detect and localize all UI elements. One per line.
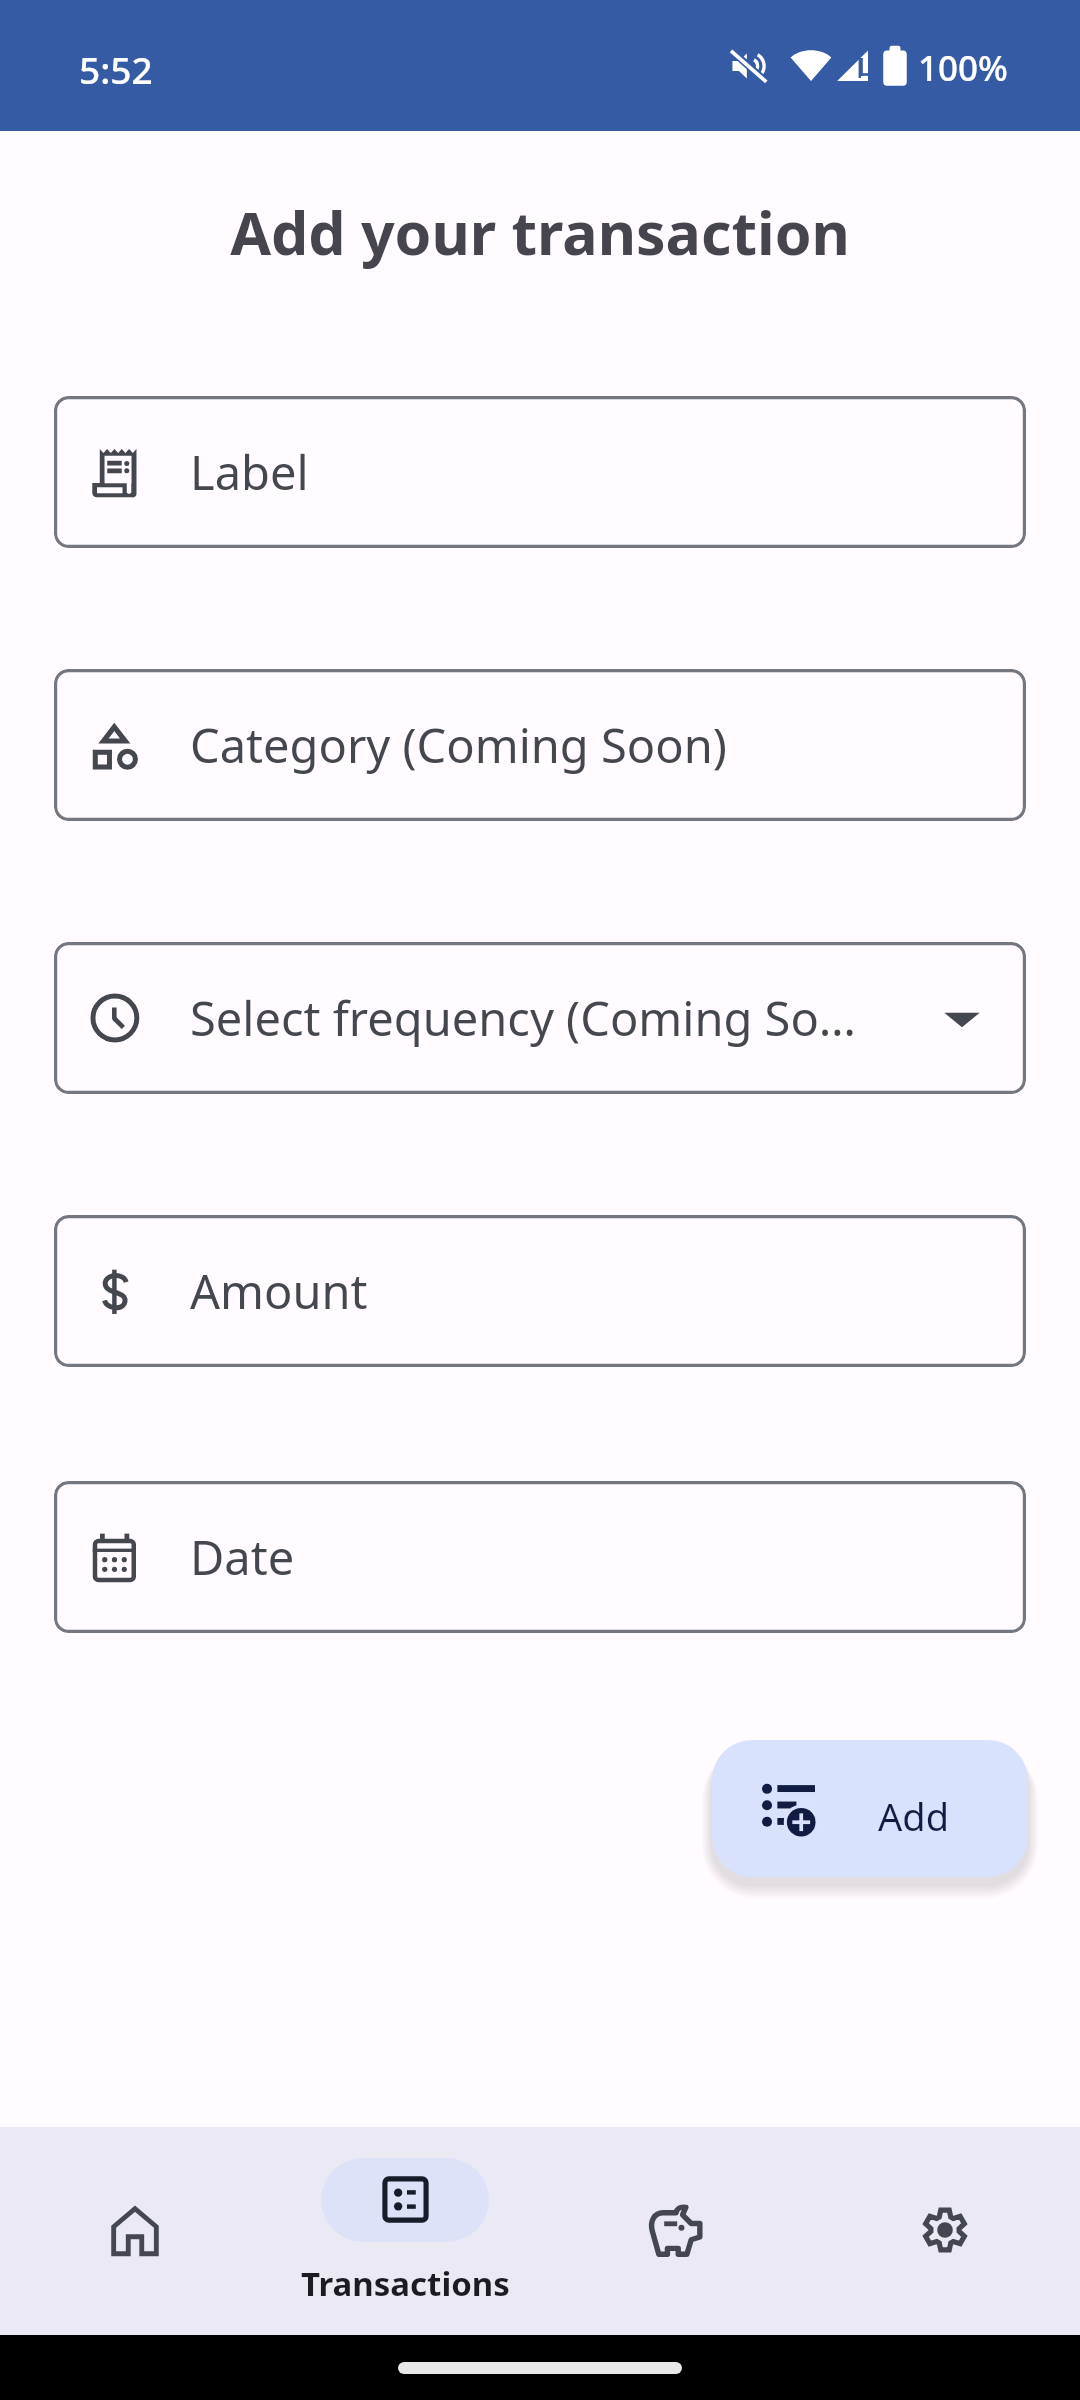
staticText: Select frequency (Coming So… xyxy=(190,986,856,1050)
button[interactable]: Date xyxy=(54,1481,1026,1633)
button[interactable]: Add xyxy=(712,1740,1028,1877)
staticText: Transactions xyxy=(301,2261,510,2306)
staticText: 100% xyxy=(918,44,1008,92)
button[interactable]: Select frequency (Coming So… xyxy=(54,942,1026,1094)
staticText: 5:52 xyxy=(79,44,153,94)
button[interactable]: Savings xyxy=(540,2127,810,2335)
staticText: Category (Coming Soon) xyxy=(190,713,727,777)
button[interactable]: Settings xyxy=(810,2127,1080,2335)
staticText: Amount xyxy=(190,1259,368,1323)
button[interactable]: Home xyxy=(0,2127,270,2335)
staticText: Date xyxy=(190,1525,295,1589)
staticText: Add xyxy=(878,1790,950,1842)
staticText: Label xyxy=(190,440,309,504)
staticText: Add your transaction xyxy=(0,192,1080,272)
button[interactable]: Label xyxy=(54,396,1026,548)
button[interactable]: Transactions xyxy=(270,2127,540,2335)
button[interactable]: Amount xyxy=(54,1215,1026,1367)
button[interactable]: Category (Coming Soon) xyxy=(54,669,1026,821)
